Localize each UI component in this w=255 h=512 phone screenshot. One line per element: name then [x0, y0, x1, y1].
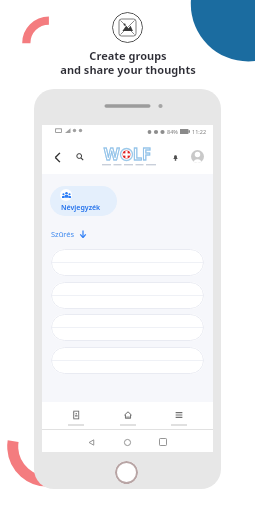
button[interactable]: Search [72, 149, 88, 165]
button[interactable] [51, 249, 204, 276]
staticText: Create groups and share your thoughts [60, 48, 196, 77]
staticText: W [104, 143, 120, 165]
button[interactable]: Notifications [168, 150, 182, 164]
button[interactable]: Profile [191, 150, 204, 163]
button[interactable]: Névjegyzék [50, 186, 117, 216]
button[interactable]: Back [84, 435, 98, 449]
staticText: Névjegyzék [61, 203, 101, 213]
staticText: 84% [167, 128, 178, 135]
button[interactable]: Recents [156, 435, 170, 449]
button[interactable]: Home [111, 402, 145, 430]
button[interactable] [51, 347, 204, 374]
staticText: LF [133, 143, 151, 165]
button[interactable]: Szűrés [49, 227, 89, 241]
button[interactable]: Home [120, 435, 134, 449]
button[interactable] [51, 282, 204, 309]
staticText: Szűrés [51, 229, 75, 239]
button[interactable]: Back [49, 149, 65, 165]
button[interactable]: Contacts [59, 402, 93, 430]
button[interactable] [51, 314, 204, 341]
staticText: 11:22 [192, 128, 207, 135]
button[interactable]: Menu [162, 402, 196, 430]
